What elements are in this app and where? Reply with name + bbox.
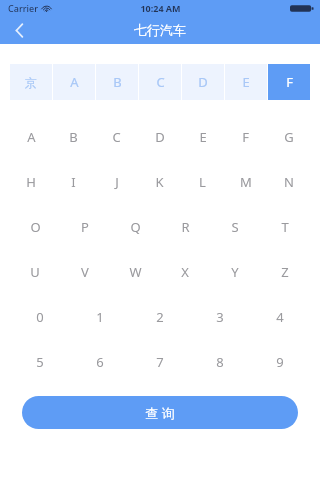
button[interactable]: 8 — [190, 339, 250, 384]
button[interactable]: U — [10, 249, 60, 294]
staticText: C — [112, 128, 121, 146]
button[interactable]: S — [210, 204, 260, 249]
button[interactable]: I — [52, 159, 95, 204]
button[interactable]: N — [267, 159, 310, 204]
staticText: S — [231, 218, 239, 236]
button[interactable]: V — [60, 249, 110, 294]
staticText: H — [26, 173, 36, 191]
staticText: 1 — [96, 308, 104, 326]
staticText: 京 — [25, 75, 37, 90]
button[interactable]: 0 — [10, 294, 70, 339]
staticText: D — [155, 128, 165, 146]
button[interactable]: C — [95, 114, 138, 159]
button[interactable]: Z — [260, 249, 310, 294]
button[interactable]: Y — [210, 249, 260, 294]
button[interactable]: X — [160, 249, 210, 294]
staticText: P — [81, 218, 89, 236]
staticText: Carrier — [8, 2, 38, 14]
staticText: C — [156, 73, 165, 91]
button[interactable]: R — [160, 204, 210, 249]
staticText: M — [240, 173, 252, 191]
button[interactable]: L — [181, 159, 224, 204]
button[interactable]: P — [60, 204, 110, 249]
button[interactable]: 5 — [10, 339, 70, 384]
staticText: 七行汽车 — [134, 22, 186, 38]
button[interactable]: 1 — [70, 294, 130, 339]
button[interactable]: F — [268, 64, 310, 100]
button[interactable]: 9 — [250, 339, 310, 384]
button[interactable]: A — [53, 64, 95, 100]
staticText: F — [242, 128, 249, 146]
staticText: D — [198, 73, 208, 91]
staticText: I — [71, 173, 76, 191]
staticText: Q — [130, 218, 141, 236]
button[interactable]: M — [224, 159, 267, 204]
button[interactable]: W — [110, 249, 160, 294]
button[interactable]: 3 — [190, 294, 250, 339]
staticText: V — [81, 263, 89, 281]
staticText: 9 — [276, 353, 284, 371]
button[interactable]: A — [10, 114, 52, 159]
staticText: A — [27, 128, 36, 146]
button[interactable]: O — [10, 204, 60, 249]
staticText: J — [115, 173, 119, 191]
staticText: L — [199, 173, 206, 191]
staticText: Z — [281, 263, 289, 281]
staticText: 8 — [216, 353, 224, 371]
staticText: 2 — [156, 308, 164, 326]
button[interactable]: B — [52, 114, 95, 159]
button[interactable]: G — [267, 114, 310, 159]
button[interactable]: 4 — [250, 294, 310, 339]
staticText: 10:24 AM — [140, 2, 181, 14]
button[interactable]: J — [95, 159, 138, 204]
button[interactable]: D — [138, 114, 181, 159]
staticText: O — [30, 218, 41, 236]
staticText: 7 — [156, 353, 164, 371]
button[interactable]: E — [225, 64, 267, 100]
staticText: Y — [231, 263, 239, 281]
button[interactable]: F — [224, 114, 267, 159]
staticText: 3 — [216, 308, 224, 326]
button[interactable]: 查 询 — [22, 396, 298, 429]
staticText: 4 — [276, 308, 284, 326]
staticText: R — [181, 218, 190, 236]
staticText: U — [30, 263, 40, 281]
staticText: X — [181, 263, 189, 281]
staticText: E — [199, 128, 207, 146]
staticText: W — [129, 263, 142, 281]
staticText: F — [286, 73, 293, 91]
button[interactable]: H — [10, 159, 52, 204]
button[interactable]: D — [182, 64, 224, 100]
staticText: N — [284, 173, 294, 191]
button[interactable]: K — [138, 159, 181, 204]
staticText: E — [242, 73, 250, 91]
staticText: K — [155, 173, 164, 191]
staticText: B — [69, 128, 78, 146]
staticText: 查 询 — [145, 404, 175, 422]
button[interactable]: 京 — [10, 64, 52, 100]
button[interactable]: 7 — [130, 339, 190, 384]
staticText: 0 — [36, 308, 44, 326]
staticText: B — [113, 73, 122, 91]
button[interactable]: E — [181, 114, 224, 159]
button[interactable]: Q — [110, 204, 160, 249]
staticText: 5 — [36, 353, 44, 371]
staticText: T — [281, 218, 289, 236]
staticText: 6 — [96, 353, 104, 371]
button[interactable]: T — [260, 204, 310, 249]
button[interactable]: C — [139, 64, 181, 100]
button[interactable]: 2 — [130, 294, 190, 339]
button[interactable]: Back — [0, 16, 38, 44]
button[interactable]: 6 — [70, 339, 130, 384]
button[interactable]: B — [96, 64, 138, 100]
staticText: G — [284, 128, 294, 146]
staticText: A — [70, 73, 79, 91]
